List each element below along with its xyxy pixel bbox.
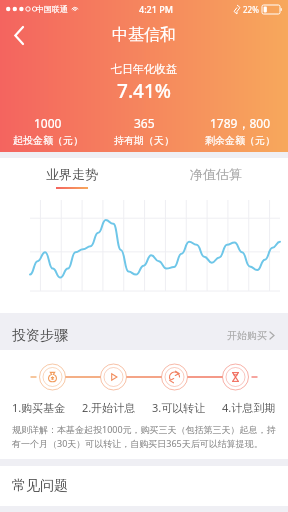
- staticText: 中基信和: [112, 25, 176, 45]
- staticText: 365: [134, 115, 155, 131]
- staticText: 1000: [34, 115, 62, 131]
- staticText: 1789，800: [210, 115, 271, 131]
- staticText: 持有期（天）: [114, 134, 174, 147]
- button[interactable]: 常见问题: [0, 466, 288, 506]
- staticText: 投资步骤: [12, 327, 68, 345]
- staticText: 净值估算: [190, 166, 242, 182]
- staticText: 1.购买基金: [12, 400, 66, 415]
- staticText: 常见问题: [12, 477, 68, 495]
- staticText: 3.可以转让: [152, 400, 206, 415]
- staticText: 剩余金额（元）: [205, 134, 275, 147]
- staticText: 开始购买: [227, 329, 267, 342]
- staticText: 规则详解：本基金起投1000元，购买三天（包括第三天）起息，持有一个月（30天）…: [12, 423, 276, 450]
- staticText: 7.41%: [0, 78, 288, 104]
- button[interactable]: Back: [0, 18, 38, 52]
- staticText: 中国联通: [36, 4, 68, 14]
- staticText: 4.计息到期: [222, 400, 276, 415]
- staticText: 起投金额（元）: [13, 134, 83, 147]
- button[interactable]: 净值估算: [144, 158, 288, 196]
- button[interactable]: 业界走势: [0, 158, 144, 196]
- staticText: 22%: [243, 4, 259, 15]
- staticText: 业界走势: [46, 166, 98, 182]
- staticText: 2.开始计息: [82, 400, 136, 415]
- staticText: 七日年化收益: [0, 62, 288, 76]
- button[interactable]: 开始购买: [223, 325, 278, 346]
- staticText: 4:21 PM: [139, 3, 173, 15]
